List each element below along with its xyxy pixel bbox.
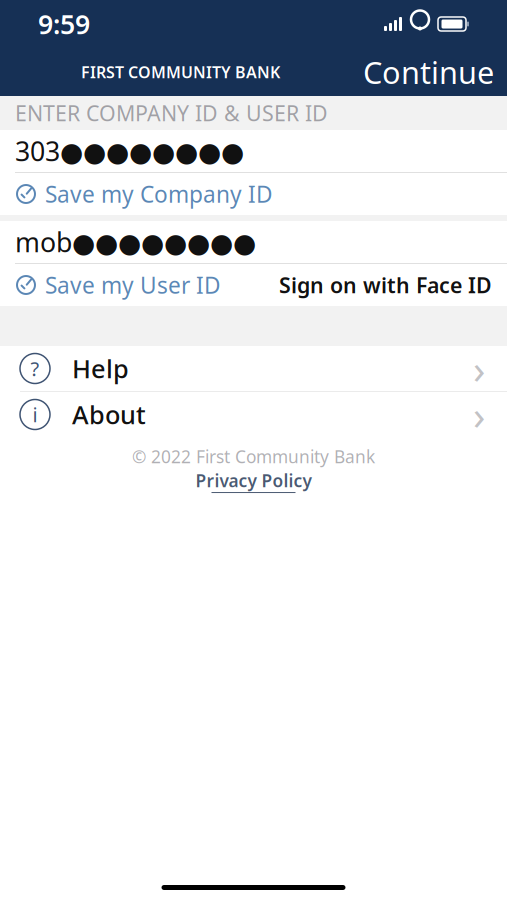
staticText: 9:59 (38, 6, 90, 42)
staticText: Help (72, 352, 129, 385)
staticText: ? (30, 355, 39, 382)
button[interactable]: ? (0, 346, 507, 391)
button[interactable]: 303●●●●●●●● (0, 130, 507, 172)
button[interactable]: Save my Company ID (15, 170, 273, 218)
staticText: i (32, 401, 37, 428)
button[interactable]: mob●●●●●●●● (0, 221, 507, 263)
staticText: › (473, 388, 485, 441)
staticText: › (473, 342, 485, 395)
staticText: FIRST COMMUNITY BANK (81, 61, 280, 83)
staticText: 303●●●●●●●● (15, 133, 244, 169)
button[interactable]: i (0, 392, 507, 437)
staticText: Sign on with Face ID (279, 271, 492, 299)
staticText: Privacy Policy (195, 469, 311, 492)
staticText: Continue (363, 52, 494, 92)
button[interactable]: Save my User ID (15, 261, 221, 309)
staticText: Save my Company ID (45, 179, 273, 209)
staticText: ENTER COMPANY ID & USER ID (15, 99, 328, 127)
staticText: Save my User ID (45, 270, 221, 300)
button[interactable]: Continue (355, 46, 502, 98)
staticText: © 2022 First Community Bank (132, 445, 375, 468)
staticText: mob●●●●●●●● (15, 224, 256, 260)
button[interactable]: Sign on with Face ID (279, 262, 492, 308)
button[interactable]: Privacy Policy (195, 469, 311, 493)
staticText: About (72, 398, 146, 431)
